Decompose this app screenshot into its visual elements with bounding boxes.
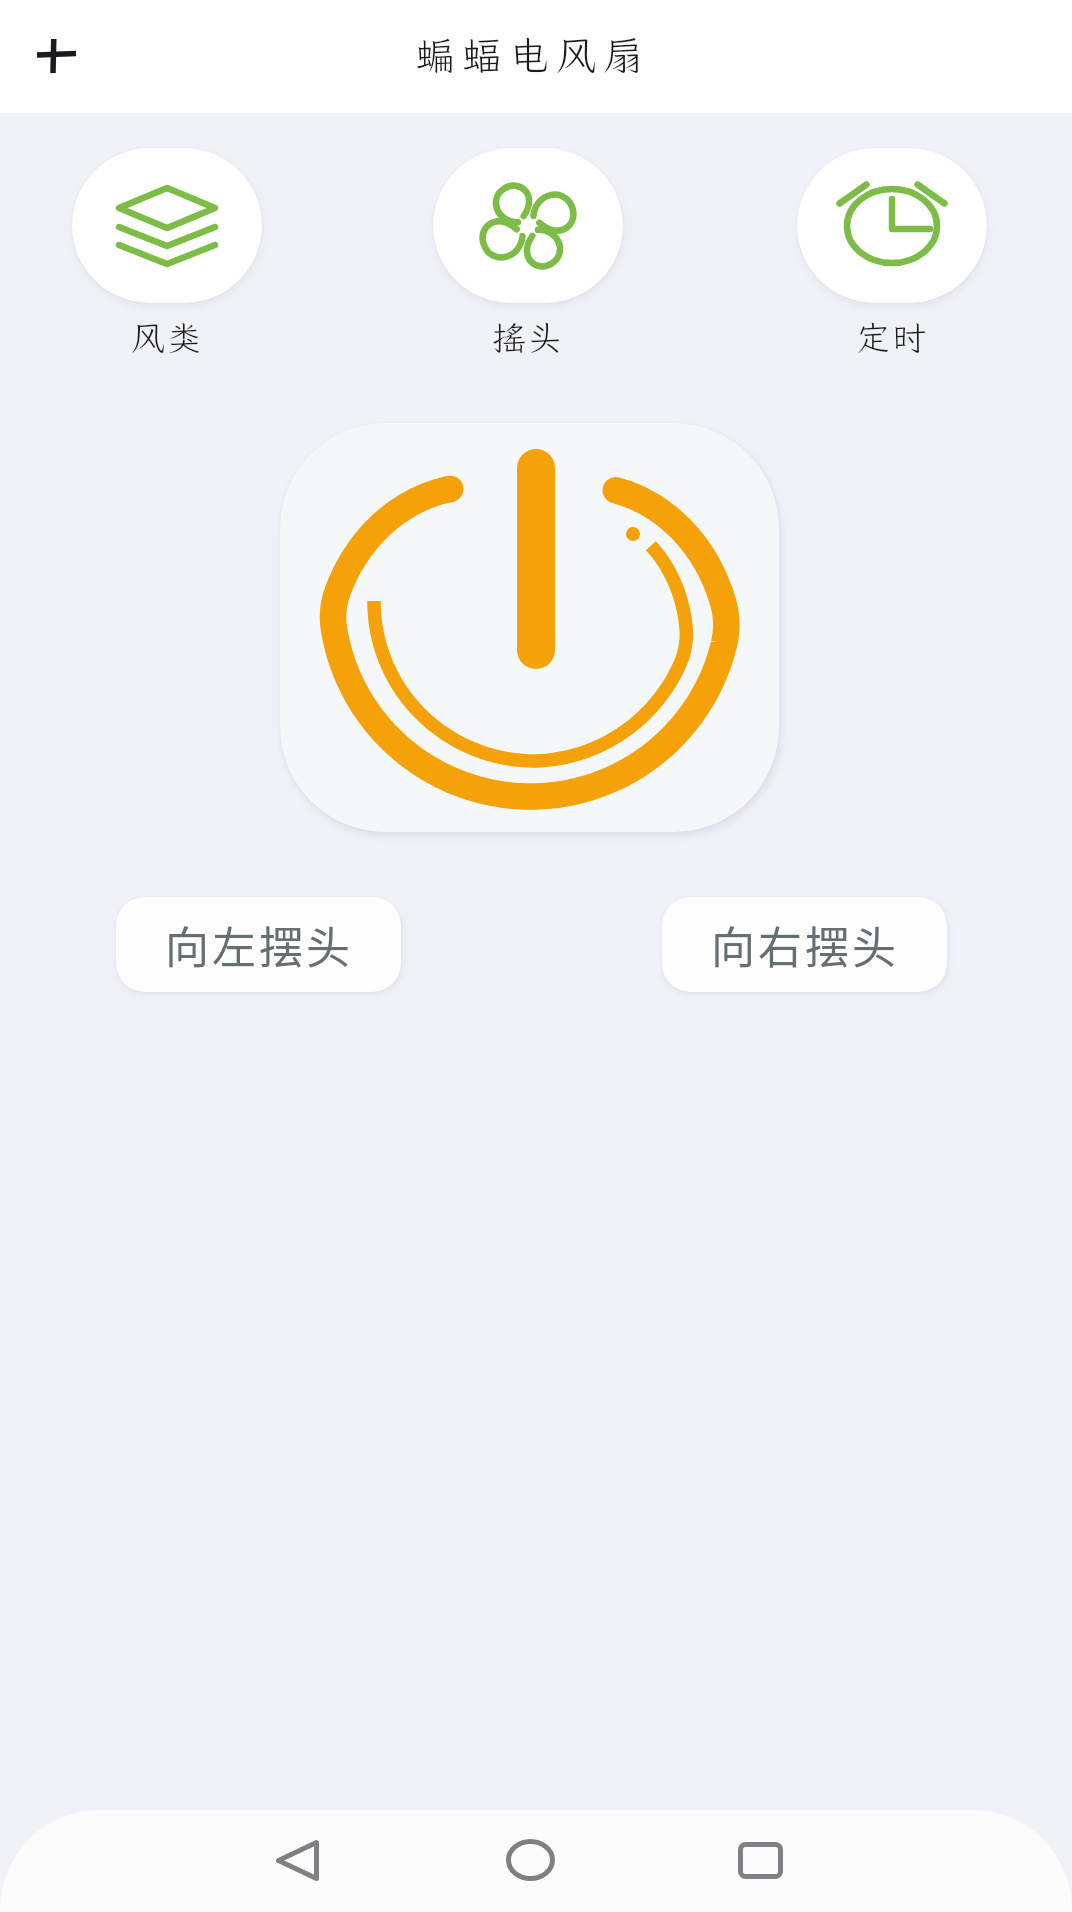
staticText: 向右摆头 xyxy=(711,913,899,977)
staticText: 向左摆头 xyxy=(165,913,353,977)
button[interactable]: Back xyxy=(252,1815,342,1905)
button[interactable]: 向左摆头 xyxy=(116,897,401,992)
button[interactable]: Power xyxy=(280,423,779,832)
button[interactable]: Recents xyxy=(715,1815,805,1905)
button[interactable]: Add xyxy=(12,12,100,100)
button[interactable]: 摇头 xyxy=(433,148,623,360)
staticText: 风类 xyxy=(131,315,203,360)
staticText: 蝙蝠电风扇 xyxy=(415,29,650,82)
staticText: 摇头 xyxy=(492,315,564,360)
staticText: 定时 xyxy=(856,315,928,360)
button[interactable]: 风类 xyxy=(72,148,262,360)
button[interactable]: 向右摆头 xyxy=(662,897,947,992)
button[interactable]: Home xyxy=(485,1815,575,1905)
button[interactable]: 定时 xyxy=(797,148,987,360)
